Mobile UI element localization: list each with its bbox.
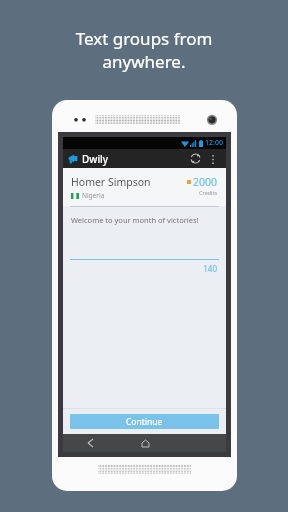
staticText: Credits [199, 189, 218, 196]
button[interactable]: Welcome to your month of victories! [71, 215, 199, 225]
staticText: Homer Simpson [71, 175, 151, 189]
button[interactable]: Homer Simpson [63, 168, 226, 206]
button[interactable]: Back [63, 434, 118, 452]
staticText: Text groups from anywhere. [0, 27, 288, 73]
button[interactable]: Refresh [185, 149, 205, 168]
staticText: Continue [126, 416, 163, 428]
button[interactable]: Continue [70, 414, 219, 429]
staticText: Dwily [82, 152, 109, 166]
staticText: 2000 [193, 175, 218, 189]
staticText: 12:00 [205, 138, 223, 148]
staticText: Nigeria [82, 191, 105, 200]
button[interactable]: More options [205, 151, 221, 167]
button[interactable]: Home [118, 434, 172, 452]
staticText: 140 [63, 263, 217, 274]
